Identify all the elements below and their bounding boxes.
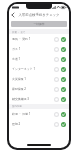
staticText: 水道 1: [12, 57, 54, 61]
button[interactable]: Done: [61, 37, 66, 42]
button[interactable]: Not done: [54, 47, 59, 52]
staticText: ガス 1: [12, 47, 54, 51]
button[interactable]: Not done: [54, 112, 59, 117]
button[interactable]: インターネット 1: [9, 64, 69, 74]
staticText: 照明 2: [12, 122, 54, 126]
staticText: 室内設備: [12, 105, 22, 108]
button[interactable]: 給湯 ・ 設備 1: [9, 109, 69, 119]
button[interactable]: 火災保険 1: [9, 74, 69, 84]
staticText: 給湯 ・ 設備 1: [12, 112, 54, 116]
button[interactable]: 水道 1: [9, 54, 69, 64]
button[interactable]: Done: [61, 112, 66, 117]
button[interactable]: Not done: [54, 97, 59, 102]
button[interactable]: 鍵交換確認 3: [9, 94, 69, 104]
button[interactable]: Done: [61, 87, 66, 92]
button[interactable]: Done: [61, 122, 66, 127]
button[interactable]: Done: [61, 97, 66, 102]
staticText: 一括操作: [33, 22, 45, 26]
button[interactable]: Done: [61, 47, 66, 52]
button[interactable]: Back: [9, 11, 17, 19]
button[interactable]: ガス 1: [9, 44, 69, 54]
button[interactable]: Done: [61, 57, 66, 62]
button[interactable]: Not done: [54, 122, 59, 127]
staticText: 鍵交換確認 3: [12, 97, 54, 101]
staticText: 家財保険 2: [12, 87, 54, 91]
button[interactable]: 一括操作: [11, 21, 67, 27]
button[interactable]: Done: [61, 67, 66, 72]
button[interactable]: 家財保険 2: [9, 84, 69, 94]
button[interactable]: Not done: [54, 77, 59, 82]
staticText: 共通 ・ 全て: [12, 30, 26, 33]
button[interactable]: Done: [61, 77, 66, 82]
staticText: 入居前点検手続きチェックシート: [17, 13, 61, 17]
button[interactable]: Not done: [54, 57, 59, 62]
button[interactable]: Not done: [54, 37, 59, 42]
button[interactable]: Not done: [54, 67, 59, 72]
staticText: 電気 ・ 契約 1: [12, 37, 54, 41]
staticText: インターネット 1: [12, 67, 54, 71]
staticText: 火災保険 1: [12, 77, 54, 81]
button[interactable]: 照明 2: [9, 119, 69, 129]
button[interactable]: Not done: [54, 87, 59, 92]
button[interactable]: 電気 ・ 契約 1: [9, 34, 69, 44]
